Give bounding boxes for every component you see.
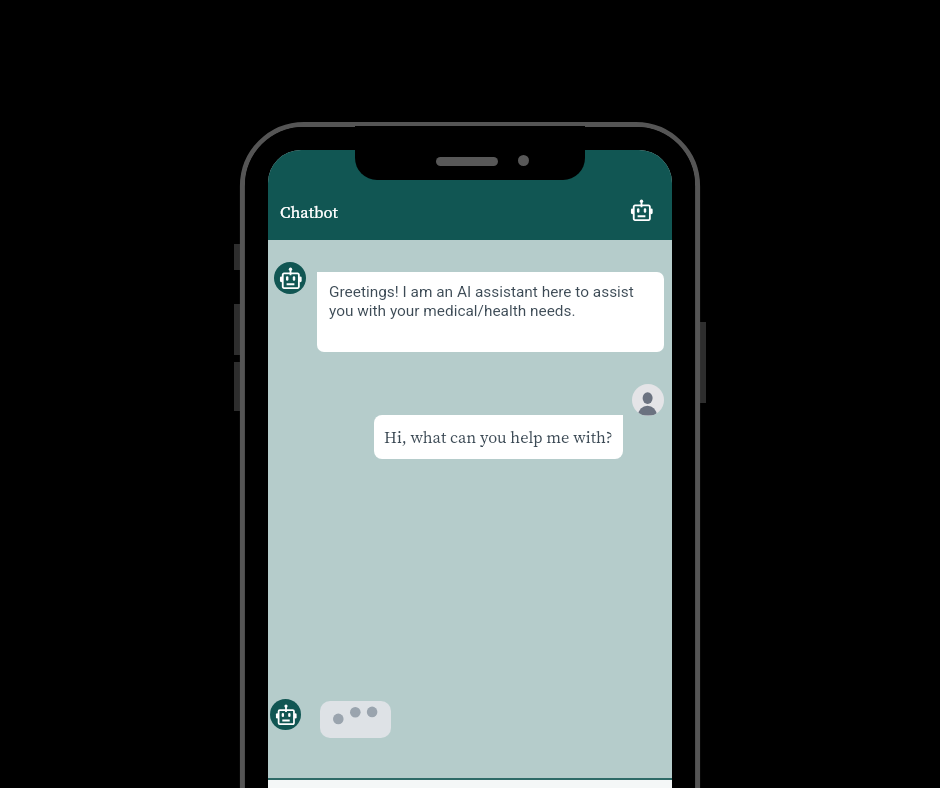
staticText: Hi, what can you help me with? — [384, 426, 613, 448]
button[interactable]: Chat bot assistant — [623, 192, 659, 228]
button[interactable]: Greetings! I am an AI assistant here to … — [317, 272, 664, 352]
staticText: Greetings! I am an AI assistant here to … — [329, 283, 649, 319]
button[interactable]: Hi, what can you help me with? — [374, 415, 623, 459]
staticText: Chatbot — [280, 201, 338, 224]
